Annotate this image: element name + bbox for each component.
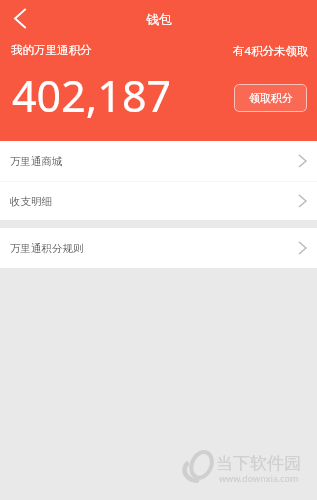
staticText: 有4积分未领取	[233, 43, 309, 59]
button[interactable]: Back	[3, 2, 35, 34]
staticText: 万里通积分规则	[10, 242, 84, 255]
button[interactable]: 领取积分	[234, 84, 307, 112]
staticText: www.downxia.com	[219, 472, 299, 484]
staticText: 402,187	[12, 66, 172, 125]
staticText: 万里通商城	[10, 155, 63, 168]
button[interactable]: 万里通商城	[0, 141, 317, 181]
staticText: 当下软件园	[216, 453, 301, 474]
button[interactable]: 收支明细	[0, 182, 317, 220]
staticText: 钱包	[146, 11, 172, 27]
button[interactable]: 万里通积分规则	[0, 228, 317, 268]
staticText: 我的万里通积分	[11, 43, 92, 57]
staticText: 领取积分	[249, 91, 293, 105]
staticText: 收支明细	[10, 195, 52, 208]
